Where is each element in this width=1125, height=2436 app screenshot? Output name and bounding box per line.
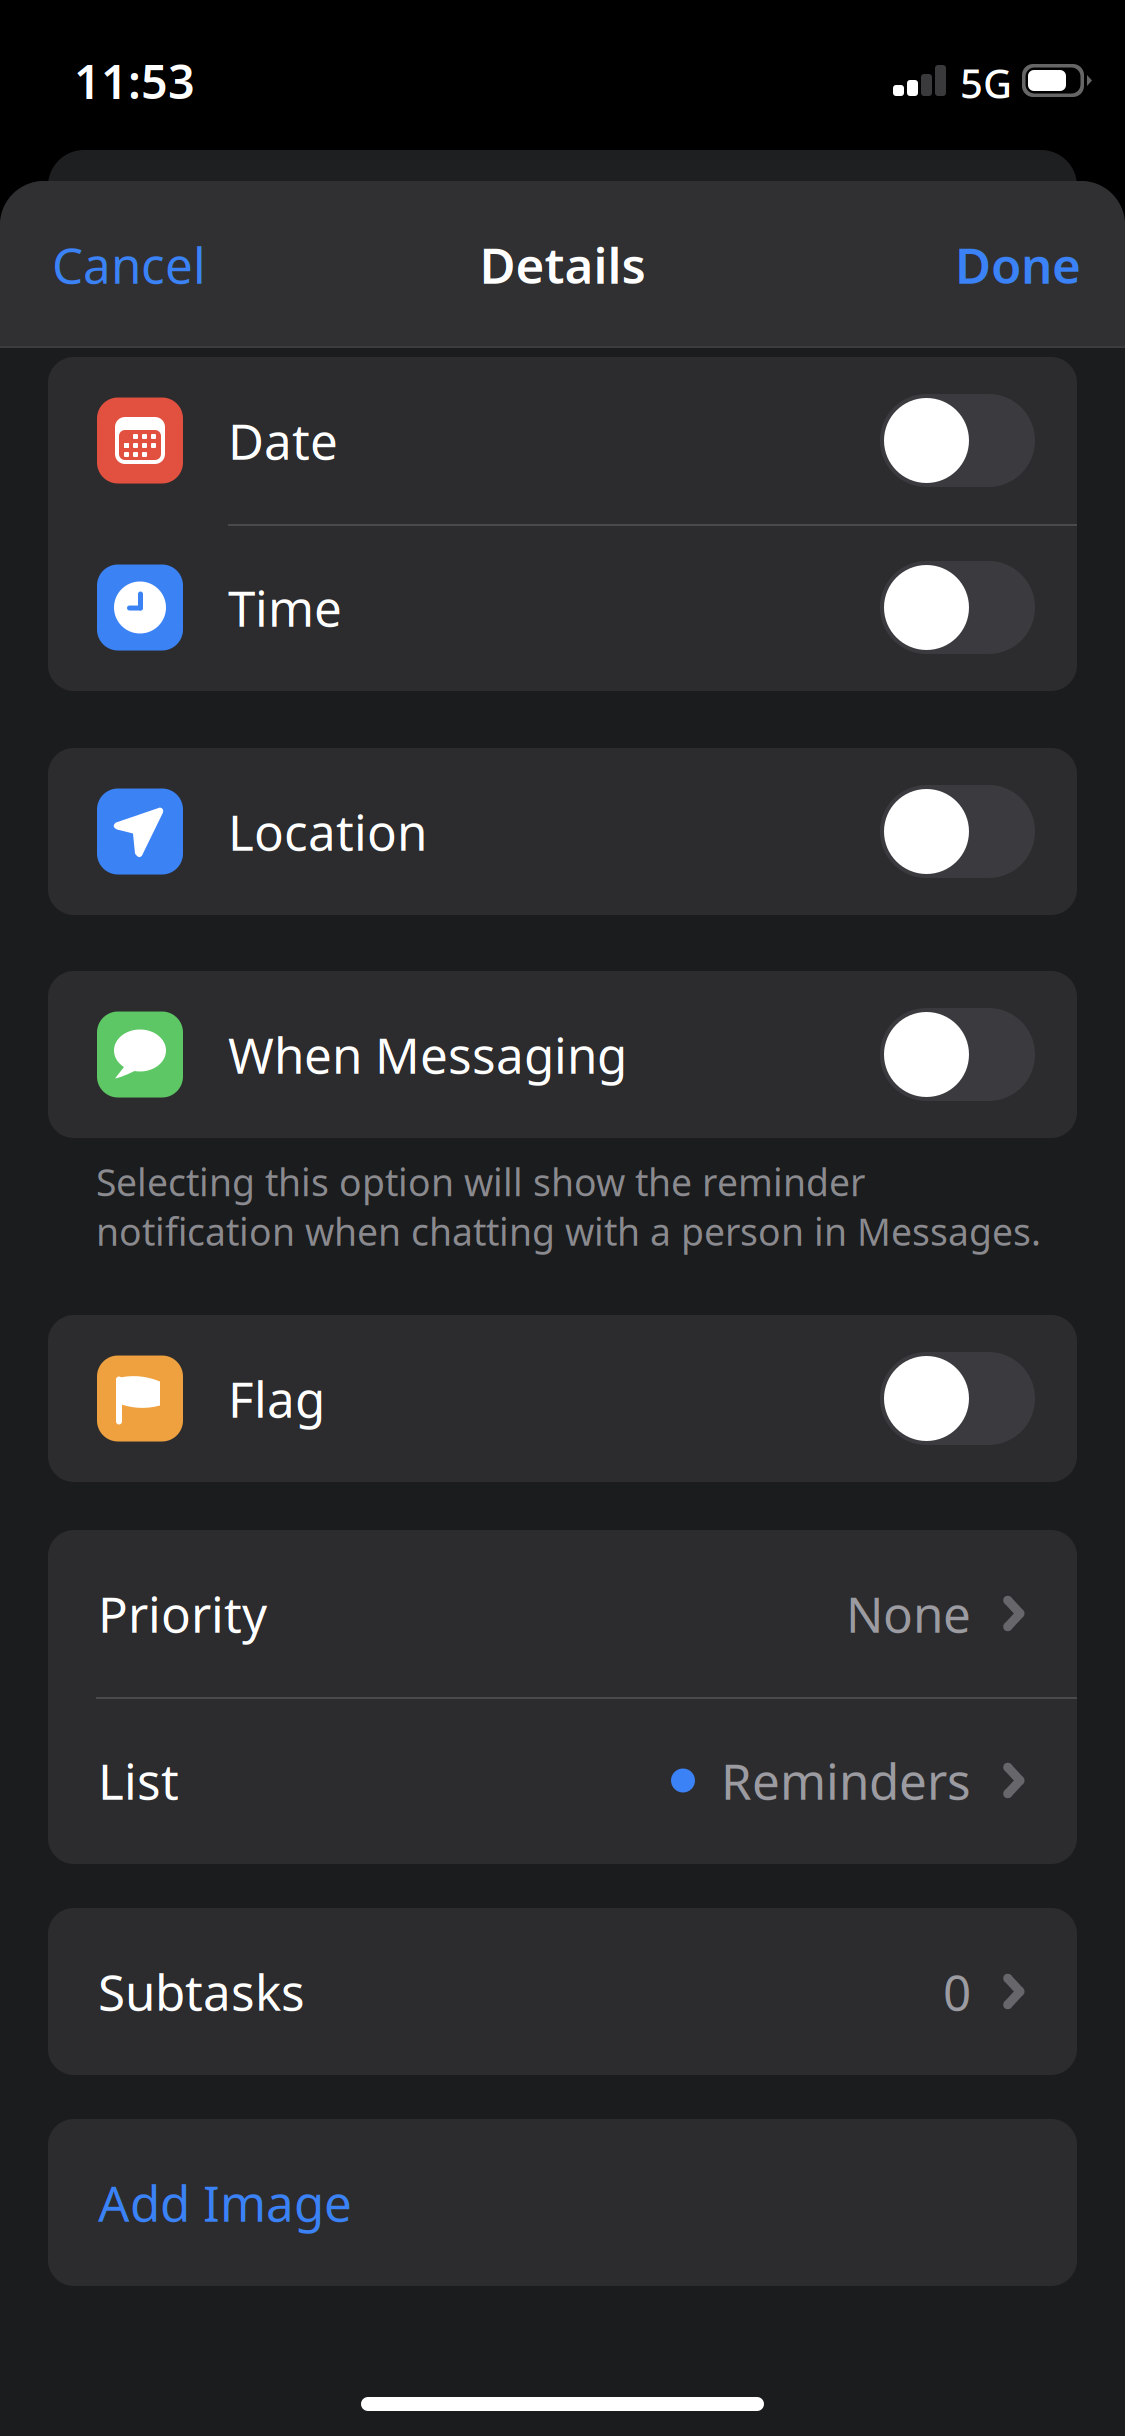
staticText: Cancel [52,232,206,297]
staticText: When Messaging [228,1022,627,1087]
button[interactable]: Priority [48,1530,1077,1697]
staticText: Priority [98,1581,267,1646]
button[interactable]: Time [48,524,1077,691]
button[interactable]: Subtasks [48,1908,1077,2075]
button[interactable]: Location [48,748,1077,915]
staticText: Date [228,408,338,473]
staticText: Reminders [721,1748,971,1813]
staticText: Subtasks [98,1959,305,2024]
button[interactable]: Cancel [0,181,260,348]
staticText: List [98,1748,179,1813]
staticText: Add Image [98,2170,352,2235]
staticText: Selecting this option will show the remi… [96,1157,1041,1256]
staticText: Flag [228,1366,325,1431]
button[interactable]: List [48,1697,1077,1864]
button[interactable]: When Messaging [48,971,1077,1138]
staticText: Details [479,232,645,297]
button[interactable]: Flag [48,1315,1077,1482]
button[interactable]: Done [0,181,260,348]
staticText: Location [228,799,427,864]
staticText: Time [228,575,342,640]
button[interactable]: Date [48,357,1077,524]
button[interactable]: Add Image [48,2119,1077,2286]
staticText: None [846,1581,971,1646]
staticText: Done [955,232,1081,297]
staticText: 5G [960,56,1012,109]
staticText: 0 [943,1959,971,2024]
staticText: 11:53 [74,50,195,112]
